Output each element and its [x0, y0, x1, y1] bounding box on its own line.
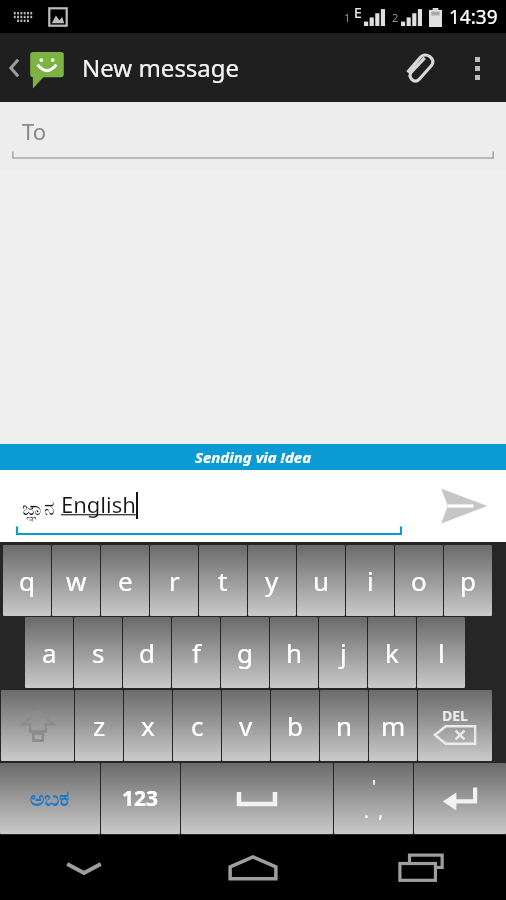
button[interactable]: m [369, 690, 417, 761]
button[interactable]: Hide keyboard [0, 835, 168, 900]
button[interactable]: b [271, 690, 319, 761]
staticText: l [438, 635, 445, 670]
staticText: o [411, 563, 427, 598]
staticText: h [286, 635, 303, 670]
staticText: r [169, 563, 180, 598]
staticText: g [237, 635, 253, 670]
staticText: u [313, 563, 330, 598]
staticText: q [19, 563, 35, 598]
staticText: n [336, 708, 353, 743]
button[interactable]: n [320, 690, 368, 761]
button[interactable]: p [444, 545, 492, 616]
staticText: English [61, 489, 136, 519]
button[interactable]: Numbers [101, 763, 180, 834]
button[interactable]: f [172, 617, 220, 688]
button[interactable]: Delete [418, 690, 492, 761]
button[interactable]: c [173, 690, 221, 761]
staticText: x [141, 708, 155, 743]
staticText: . , [364, 799, 384, 824]
staticText: 14:39 [449, 4, 498, 30]
button[interactable]: Punctuation [334, 763, 413, 834]
button[interactable]: u [297, 545, 345, 616]
button[interactable]: Send [420, 470, 506, 542]
staticText: New message [82, 51, 240, 84]
button[interactable]: z [75, 690, 123, 761]
button[interactable]: Recent apps [337, 835, 506, 900]
button[interactable]: y [248, 545, 296, 616]
button[interactable]: r [150, 545, 198, 616]
staticText: 1 [344, 10, 351, 25]
staticText: e [118, 563, 133, 598]
button[interactable]: Navigate up [4, 47, 72, 89]
button[interactable]: Attach [390, 39, 448, 97]
button[interactable]: Home [168, 835, 337, 900]
staticText: s [92, 635, 105, 670]
button[interactable]: l [417, 617, 465, 688]
staticText: p [460, 563, 476, 598]
staticText: Sending via !dea [195, 447, 312, 467]
button[interactable]: g [221, 617, 269, 688]
staticText: j [340, 635, 347, 670]
button[interactable]: x [124, 690, 172, 761]
button[interactable]: Shift [1, 690, 74, 761]
staticText: z [93, 708, 106, 743]
staticText: f [192, 635, 201, 670]
button[interactable]: w [52, 545, 100, 616]
button[interactable]: s [74, 617, 122, 688]
staticText: c [191, 708, 204, 743]
button[interactable]: d [123, 617, 171, 688]
button[interactable]: k [368, 617, 416, 688]
button[interactable]: h [270, 617, 318, 688]
staticText: k [385, 635, 399, 670]
staticText: w [66, 563, 87, 598]
staticText: 123 [122, 784, 159, 813]
button[interactable]: ಜ್ಞಾನ [0, 470, 420, 542]
staticText: v [239, 708, 253, 743]
button[interactable]: Switch language [0, 763, 100, 834]
staticText: m [381, 708, 406, 743]
staticText: E [354, 3, 362, 22]
staticText: y [265, 563, 279, 598]
button[interactable]: To [0, 102, 506, 170]
staticText: d [139, 635, 155, 670]
button[interactable]: e [101, 545, 149, 616]
button[interactable]: Space [181, 763, 333, 834]
staticText: b [287, 708, 303, 743]
staticText: 2 [392, 10, 399, 25]
button[interactable]: a [25, 617, 73, 688]
button[interactable]: v [222, 690, 270, 761]
staticText: i [367, 563, 374, 598]
button[interactable]: j [319, 617, 367, 688]
staticText: ಜ್ಞಾನ [22, 500, 55, 519]
button[interactable]: Enter [414, 763, 506, 834]
button[interactable]: t [199, 545, 247, 616]
staticText: DEL [442, 706, 468, 725]
button[interactable]: q [3, 545, 51, 616]
button[interactable]: i [346, 545, 394, 616]
staticText: ಅಬಕ [30, 788, 70, 810]
button[interactable]: o [395, 545, 443, 616]
staticText: a [42, 635, 57, 670]
staticText: t [218, 563, 228, 598]
button[interactable]: More options [448, 39, 506, 97]
staticText: ' [372, 774, 377, 799]
staticText: To [22, 116, 47, 146]
